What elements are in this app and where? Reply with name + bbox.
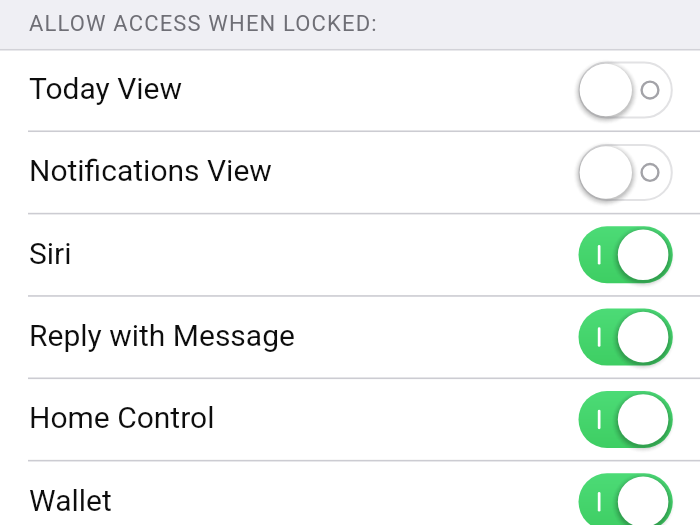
staticText: Notifications View	[29, 153, 272, 188]
button[interactable]: Notifications View toggle, off	[579, 144, 673, 201]
button[interactable]: Home Control	[0, 378, 700, 460]
staticText: Reply with Message	[29, 318, 295, 353]
staticText: Home Control	[29, 400, 215, 435]
button[interactable]: Today View	[0, 49, 700, 131]
staticText: Siri	[29, 236, 72, 271]
button[interactable]: Reply with Message	[0, 296, 700, 378]
staticText: Today View	[29, 71, 183, 106]
staticText: ALLOW ACCESS WHEN LOCKED:	[29, 11, 378, 37]
button[interactable]: Wallet	[0, 461, 700, 525]
button[interactable]: Home Control toggle, on	[579, 391, 673, 448]
button[interactable]: Siri	[0, 214, 700, 296]
button[interactable]: Reply with Message toggle, on	[579, 309, 673, 366]
button[interactable]: Wallet toggle, on	[579, 474, 673, 525]
button[interactable]: Today View toggle, off	[579, 62, 673, 119]
staticText: Wallet	[29, 483, 112, 518]
button[interactable]: Notifications View	[0, 131, 700, 213]
button[interactable]: Siri toggle, on	[579, 227, 673, 284]
